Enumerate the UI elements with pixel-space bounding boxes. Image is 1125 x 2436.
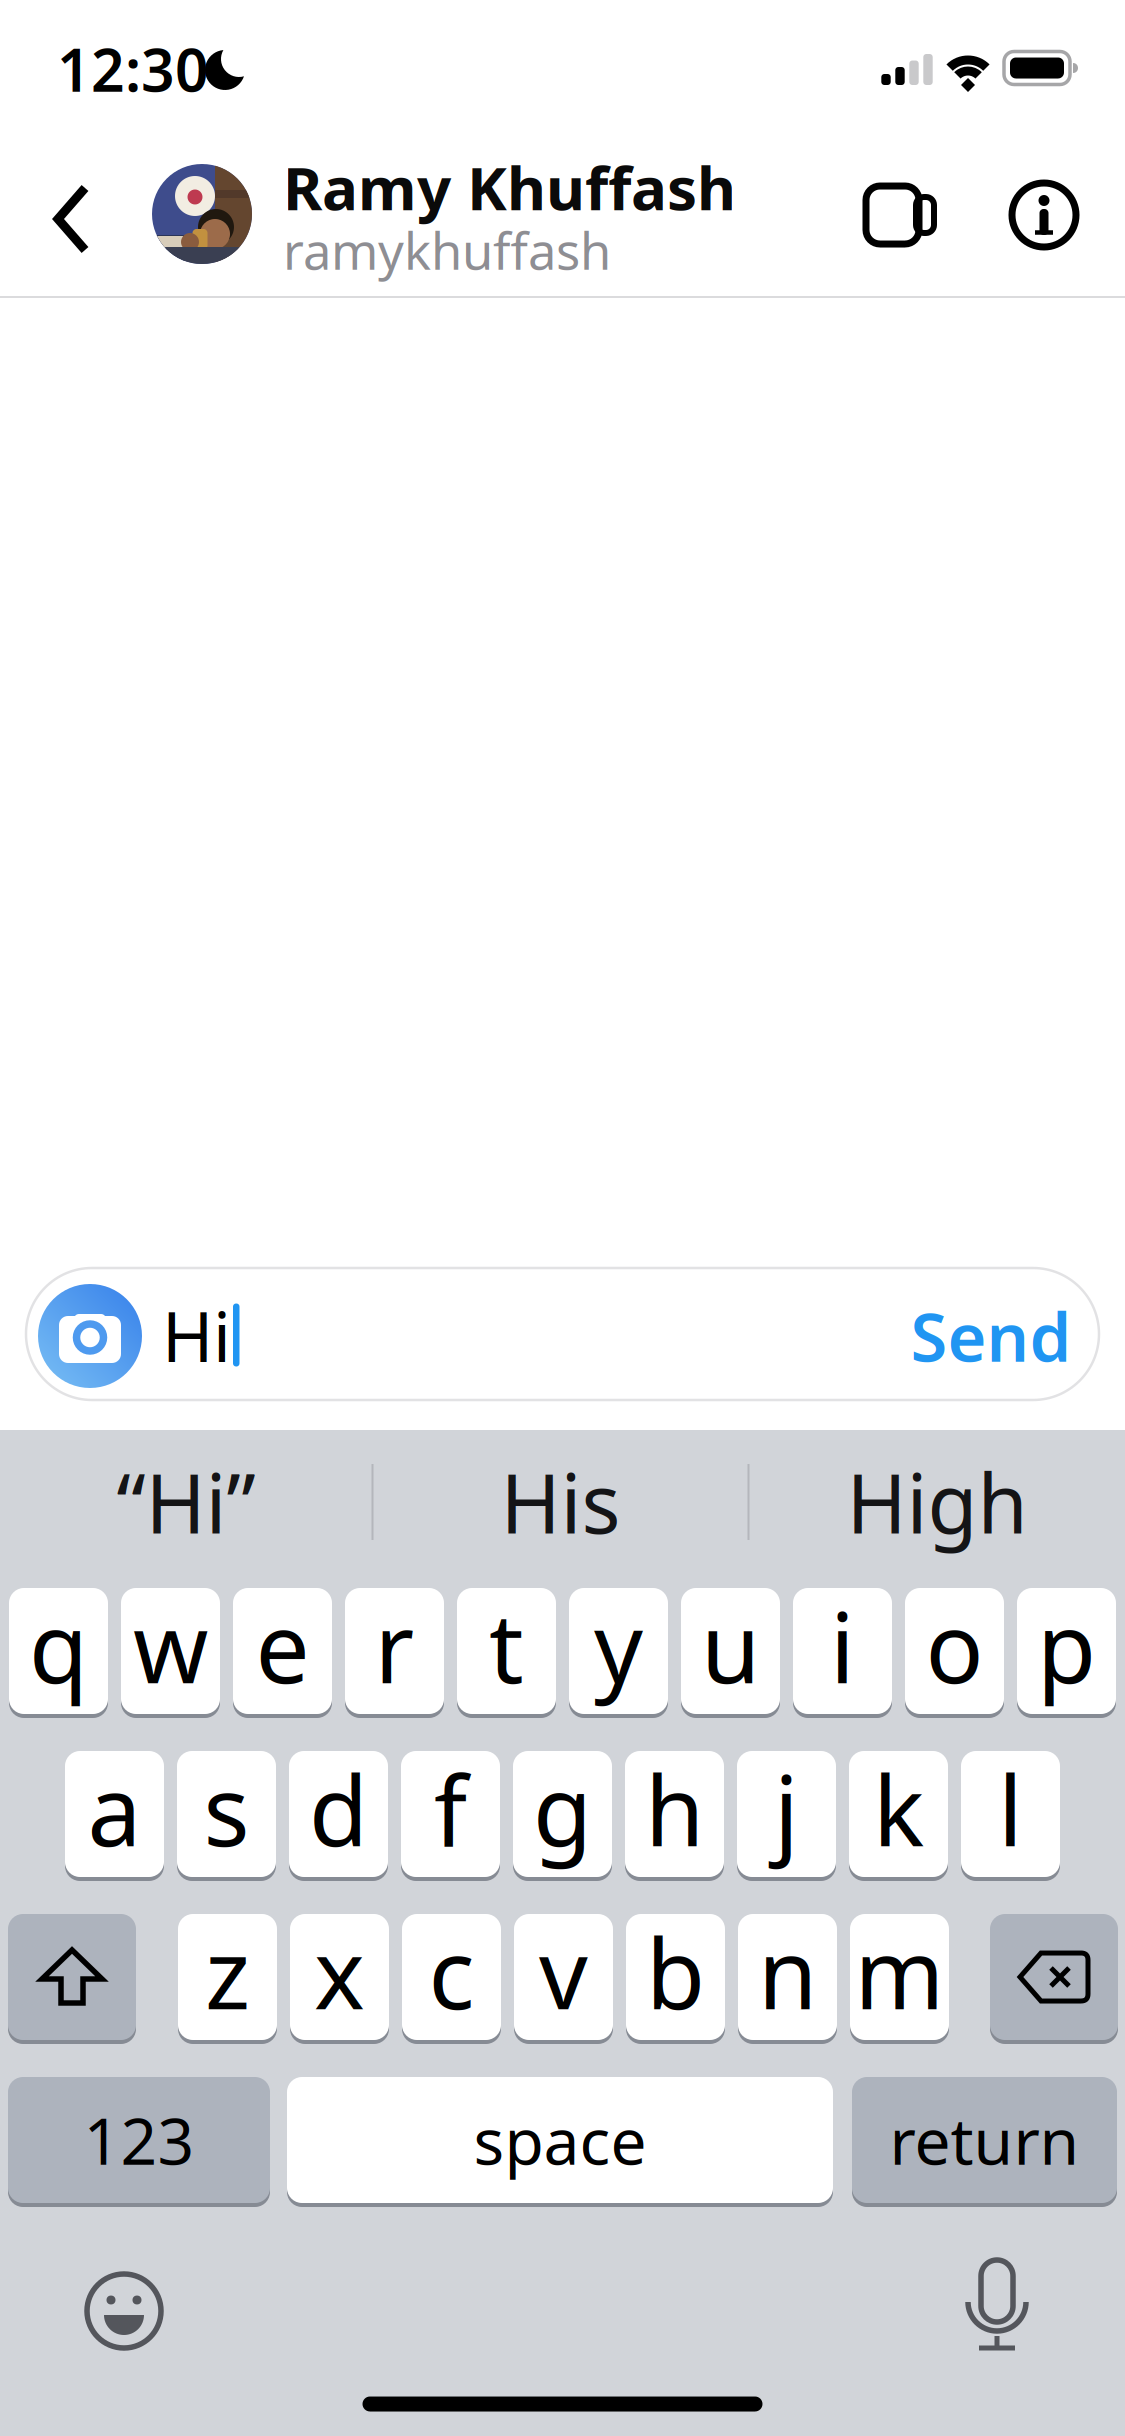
staticText: 12:30: [57, 30, 209, 108]
staticText: b: [646, 1908, 705, 2036]
button[interactable]: “Hi”: [0, 1450, 372, 1554]
button[interactable]: Conversation information: [1009, 180, 1079, 250]
button[interactable]: s: [177, 1749, 276, 1879]
button[interactable]: g: [513, 1749, 612, 1879]
button[interactable]: a: [65, 1749, 164, 1879]
button[interactable]: Delete: [990, 1912, 1118, 2042]
button[interactable]: p: [1017, 1586, 1116, 1716]
staticText: t: [489, 1582, 524, 1710]
button[interactable]: l: [961, 1749, 1060, 1879]
button[interactable]: m: [850, 1912, 949, 2042]
button[interactable]: v: [514, 1912, 613, 2042]
staticText: l: [998, 1745, 1023, 1873]
button[interactable]: k: [849, 1749, 948, 1879]
staticText: v: [539, 1908, 588, 2036]
button[interactable]: Video call: [863, 184, 939, 246]
staticText: f: [434, 1745, 467, 1873]
button[interactable]: High: [749, 1450, 1125, 1554]
staticText: e: [255, 1582, 309, 1710]
staticText: z: [205, 1908, 250, 2036]
staticText: Send: [910, 1292, 1071, 1380]
staticText: n: [758, 1908, 817, 2036]
button[interactable]: return: [852, 2075, 1117, 2205]
staticText: Ramy Khuffash: [283, 147, 736, 227]
staticText: His: [500, 1448, 620, 1556]
button[interactable]: n: [738, 1912, 837, 2042]
staticText: space: [473, 2097, 646, 2182]
staticText: c: [428, 1908, 474, 2036]
staticText: s: [203, 1745, 249, 1873]
staticText: d: [309, 1745, 368, 1873]
staticText: ramykhuffash: [283, 216, 611, 284]
button[interactable]: w: [121, 1586, 220, 1716]
button[interactable]: d: [289, 1749, 388, 1879]
button[interactable]: b: [626, 1912, 725, 2042]
button[interactable]: j: [737, 1749, 836, 1879]
button[interactable]: u: [681, 1586, 780, 1716]
staticText: w: [133, 1582, 208, 1710]
button[interactable]: Shift: [8, 1912, 136, 2042]
button[interactable]: Camera: [38, 1284, 142, 1388]
button[interactable]: Ramy Khuffash: [0, 0, 1125, 298]
staticText: High: [846, 1448, 1027, 1556]
button[interactable]: Back: [54, 182, 90, 256]
button[interactable]: c: [402, 1912, 501, 2042]
button[interactable]: Dictate: [962, 2258, 1032, 2354]
staticText: a: [87, 1745, 141, 1873]
button[interactable]: o: [905, 1586, 1004, 1716]
staticText: q: [29, 1582, 88, 1710]
staticText: 123: [83, 2097, 194, 2182]
button[interactable]: Emoji: [84, 2271, 164, 2351]
button[interactable]: z: [178, 1912, 277, 2042]
staticText: u: [701, 1582, 760, 1710]
button[interactable]: y: [569, 1586, 668, 1716]
button[interactable]: f: [401, 1749, 500, 1879]
button[interactable]: h: [625, 1749, 724, 1879]
staticText: o: [925, 1582, 983, 1710]
staticText: return: [889, 2097, 1079, 2182]
button[interactable]: His: [372, 1450, 749, 1554]
button[interactable]: i: [793, 1586, 892, 1716]
staticText: i: [830, 1582, 855, 1710]
staticText: y: [594, 1582, 643, 1710]
staticText: Hi: [162, 1289, 231, 1381]
button[interactable]: Send: [910, 1292, 1071, 1380]
button[interactable]: Hi: [162, 1290, 802, 1380]
button[interactable]: Profile: [152, 164, 252, 264]
staticText: j: [774, 1745, 799, 1873]
button[interactable]: q: [9, 1586, 108, 1716]
staticText: g: [533, 1745, 592, 1873]
staticText: k: [873, 1745, 924, 1873]
staticText: p: [1037, 1582, 1096, 1710]
staticText: m: [854, 1908, 944, 2036]
staticText: “Hi”: [116, 1448, 255, 1556]
button[interactable]: r: [345, 1586, 444, 1716]
button[interactable]: space: [287, 2075, 833, 2205]
button[interactable]: 123: [8, 2075, 270, 2205]
button[interactable]: e: [233, 1586, 332, 1716]
staticText: h: [645, 1745, 704, 1873]
button[interactable]: t: [457, 1586, 556, 1716]
staticText: x: [314, 1908, 365, 2036]
button[interactable]: x: [290, 1912, 389, 2042]
staticText: r: [374, 1582, 414, 1710]
